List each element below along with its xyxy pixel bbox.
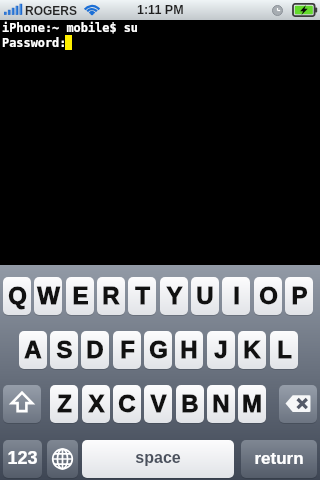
button[interactable]: space xyxy=(82,440,234,478)
staticText: 1:11 PM xyxy=(137,3,184,17)
button[interactable]: C xyxy=(113,385,141,423)
staticText: K xyxy=(243,336,261,363)
button[interactable]: F xyxy=(113,331,141,369)
button[interactable]: Change keyboard xyxy=(47,440,78,478)
button[interactable]: S xyxy=(50,331,78,369)
staticText: X xyxy=(88,390,105,417)
staticText: return xyxy=(254,449,304,468)
button[interactable]: T xyxy=(128,277,156,315)
button[interactable]: P xyxy=(285,277,313,315)
button[interactable]: O xyxy=(254,277,282,315)
button[interactable]: Y xyxy=(160,277,188,315)
staticText: F xyxy=(120,336,135,363)
button[interactable]: A xyxy=(19,331,47,369)
button[interactable]: I xyxy=(222,277,250,315)
staticText: B xyxy=(181,390,199,417)
staticText: U xyxy=(196,282,214,309)
staticText: Password: xyxy=(2,36,67,50)
button[interactable]: 123 xyxy=(3,440,42,478)
staticText: Z xyxy=(57,390,72,417)
staticText: 123 xyxy=(7,448,38,468)
button[interactable]: H xyxy=(175,331,203,369)
staticText: I xyxy=(233,282,240,309)
button[interactable]: R xyxy=(97,277,125,315)
staticText: iPhone:~ mobile$ su xyxy=(2,21,139,35)
staticText: Q xyxy=(8,282,27,309)
staticText: R xyxy=(102,282,120,309)
staticText: S xyxy=(56,336,73,363)
button[interactable]: Q xyxy=(3,277,31,315)
staticText: O xyxy=(259,282,278,309)
staticText: ROGERS xyxy=(25,4,78,17)
button[interactable]: return xyxy=(241,440,317,478)
button[interactable]: W xyxy=(34,277,62,315)
button[interactable]: U xyxy=(191,277,219,315)
button[interactable]: Shift xyxy=(3,385,41,423)
staticText: A xyxy=(24,336,42,363)
staticText: E xyxy=(72,282,89,309)
button[interactable]: K xyxy=(238,331,266,369)
staticText: T xyxy=(135,282,150,309)
staticText: W xyxy=(37,282,60,309)
button[interactable]: N xyxy=(207,385,235,423)
staticText: C xyxy=(118,390,136,417)
button[interactable]: J xyxy=(207,331,235,369)
staticText: N xyxy=(212,390,230,417)
button[interactable]: M xyxy=(238,385,266,423)
staticText: Y xyxy=(166,282,183,309)
staticText: M xyxy=(242,390,262,417)
button[interactable]: Z xyxy=(50,385,78,423)
staticText: P xyxy=(291,282,308,309)
staticText: D xyxy=(86,336,104,363)
button[interactable]: Backspace xyxy=(279,385,317,423)
button[interactable]: D xyxy=(81,331,109,369)
button[interactable]: B xyxy=(176,385,204,423)
staticText: H xyxy=(180,336,198,363)
staticText: J xyxy=(214,336,228,363)
button[interactable]: L xyxy=(270,331,298,369)
button[interactable]: E xyxy=(66,277,94,315)
button[interactable]: X xyxy=(82,385,110,423)
staticText: V xyxy=(150,390,167,417)
staticText: space xyxy=(135,449,181,467)
staticText: G xyxy=(149,336,168,363)
button[interactable]: G xyxy=(144,331,172,369)
staticText: L xyxy=(277,336,292,363)
button[interactable]: V xyxy=(144,385,172,423)
